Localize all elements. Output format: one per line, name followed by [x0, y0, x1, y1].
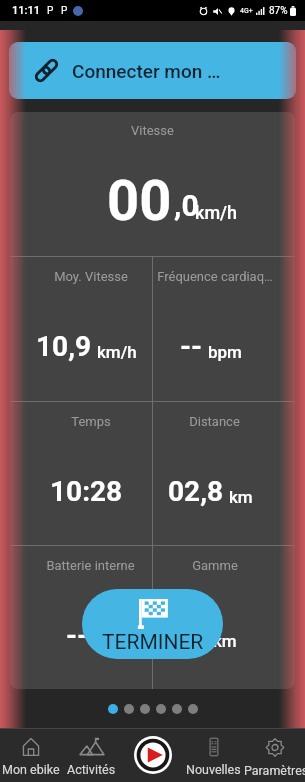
staticText: Moy. Vitesse [54, 269, 128, 284]
button[interactable]: Connecter mon … [9, 42, 296, 99]
button[interactable]: Démarrer [134, 736, 172, 774]
button[interactable]: Activités [61, 728, 122, 782]
staticText: Activités [67, 762, 116, 777]
staticText: P [61, 5, 68, 17]
staticText: Batterie interne [46, 558, 135, 573]
staticText: Nouvelles [186, 762, 241, 777]
staticText: 00 [107, 168, 172, 234]
staticText: Temps [71, 414, 111, 429]
staticText: -- [185, 619, 208, 652]
staticText: 11:11 [12, 4, 40, 17]
staticText: -- [66, 619, 89, 652]
staticText: bpm [208, 342, 242, 362]
staticText: 10:28 [50, 475, 123, 508]
button[interactable]: Paramètres [244, 728, 305, 782]
staticText: Fréquence cardiaq… [157, 269, 273, 284]
staticText: km/h [195, 202, 238, 223]
staticText: P [47, 5, 54, 17]
staticText: Distance [189, 414, 240, 429]
staticText: 10,9 [36, 330, 92, 363]
staticText: Paramètres [244, 763, 305, 778]
staticText: 4G+ [240, 7, 253, 15]
staticText: TERMINER [102, 630, 204, 655]
button[interactable]: TERMINER [82, 589, 223, 659]
staticText: 87% [269, 5, 288, 17]
staticText: km [213, 631, 237, 651]
staticText: % [94, 631, 107, 651]
staticText: Gamme [192, 558, 238, 573]
button[interactable]: Mon ebike [0, 728, 61, 782]
staticText: km/h [97, 342, 137, 362]
staticText: -- [180, 330, 203, 363]
staticText: Connecter mon … [72, 60, 221, 82]
button[interactable]: Nouvelles [183, 728, 244, 782]
staticText: Vitesse [131, 123, 174, 138]
staticText: 02,8 [168, 475, 224, 508]
staticText: Mon ebike [2, 762, 60, 777]
staticText: ,0 [174, 188, 199, 223]
staticText: km [229, 487, 253, 507]
